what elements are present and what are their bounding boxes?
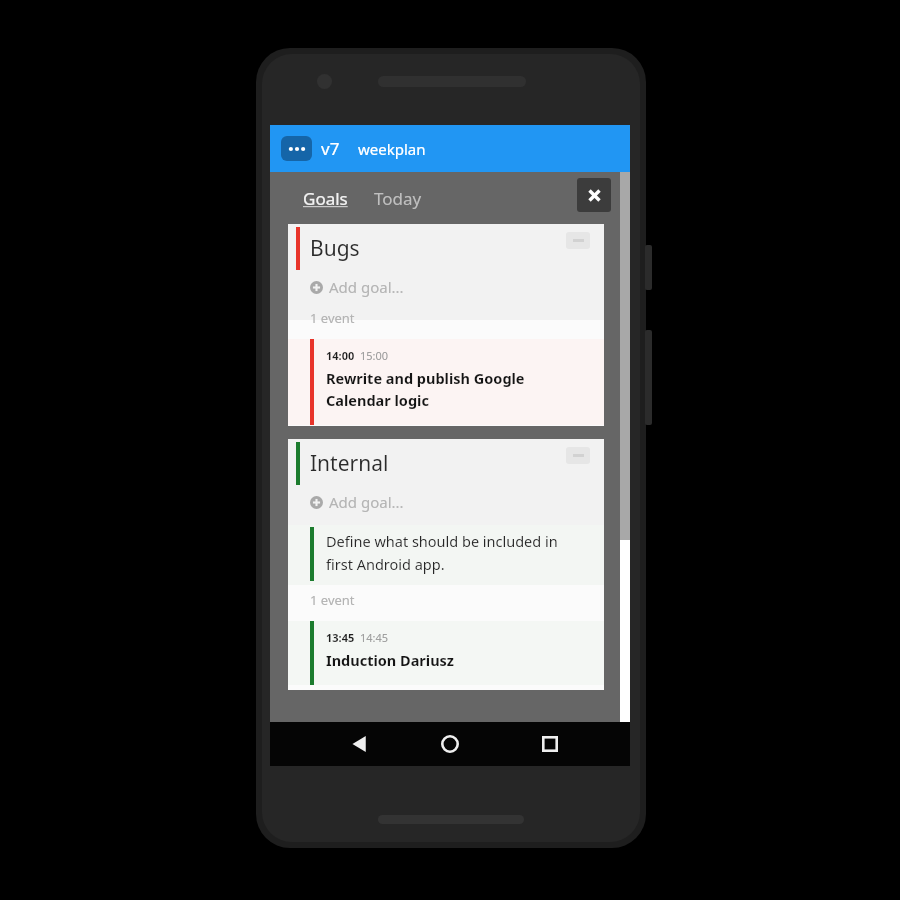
button[interactable]: 14:00: [288, 339, 604, 425]
button[interactable]: Define what should be included in: [288, 525, 604, 585]
button[interactable]: Goals: [301, 181, 350, 216]
staticText: first Android app.: [326, 554, 445, 574]
button[interactable]: Bugs: [288, 224, 604, 426]
button[interactable]: Today: [372, 181, 424, 216]
staticText: weekplan: [358, 139, 426, 159]
button[interactable]: App icon: [281, 136, 312, 161]
staticText: 15:00: [360, 348, 389, 363]
staticText: Add goal...: [329, 277, 404, 297]
staticText: 14:45: [360, 630, 389, 645]
button[interactable]: More options: [566, 447, 590, 464]
staticText: Define what should be included in: [326, 531, 558, 551]
staticText: Internal: [310, 449, 389, 478]
button[interactable]: Close: [577, 178, 611, 212]
staticText: 1 event: [310, 591, 355, 609]
button[interactable]: More options: [566, 232, 590, 249]
staticText: v7: [321, 137, 340, 160]
staticText: 1 event: [310, 309, 355, 327]
staticText: Today: [374, 187, 422, 210]
staticText: Bugs: [310, 234, 360, 263]
button[interactable]: Recents: [522, 722, 578, 766]
staticText: Induction Dariusz: [326, 650, 454, 670]
staticText: Rewrite and publish Google: [326, 368, 525, 388]
button[interactable]: Add goal...: [288, 485, 604, 519]
staticText: 13:45: [326, 630, 355, 645]
button[interactable]: Internal: [288, 439, 604, 690]
button[interactable]: Add goal...: [288, 270, 604, 304]
staticText: Add goal...: [329, 492, 404, 512]
button[interactable]: 13:45: [288, 621, 604, 685]
button[interactable]: Back: [332, 722, 388, 766]
staticText: Goals: [303, 187, 348, 210]
staticText: 14:00: [326, 348, 355, 363]
button[interactable]: Home: [422, 722, 478, 766]
staticText: Calendar logic: [326, 390, 429, 410]
